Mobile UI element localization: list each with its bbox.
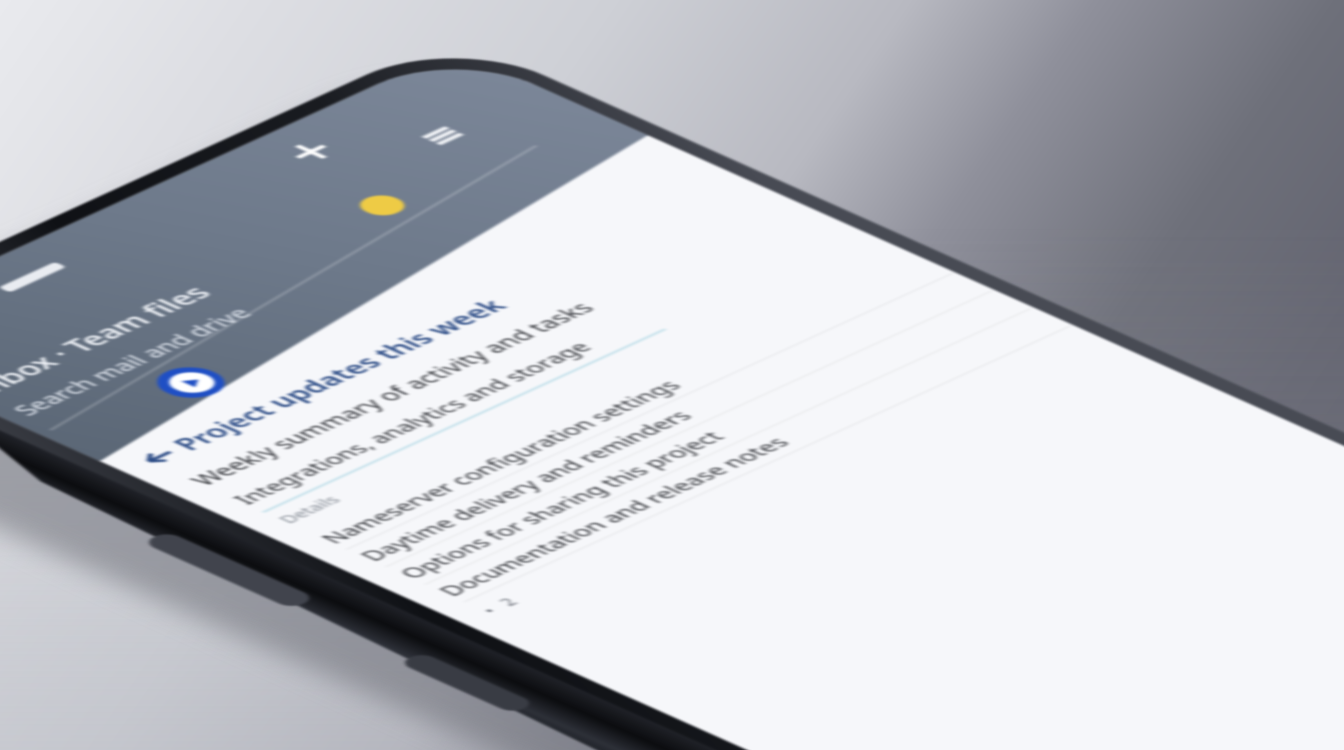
- staticText: Details: [271, 491, 348, 528]
- staticText: Daytime delivery and reminders: [351, 399, 702, 572]
- staticText: Search mail and drive: [2, 298, 260, 424]
- staticText: • 2: [475, 594, 523, 617]
- staticText: Options for sharing this project: [390, 420, 734, 590]
- button[interactable]: Project updates this week: [130, 286, 517, 477]
- button[interactable]: Nameserver configuration settings: [307, 243, 954, 563]
- staticText: Project updates this week: [161, 287, 516, 462]
- staticText: Inbox · Team files: [0, 275, 222, 406]
- staticText: Nameserver configuration settings: [312, 368, 691, 555]
- button[interactable]: Compose: [271, 133, 351, 170]
- button[interactable]: Account: [351, 191, 413, 220]
- button[interactable]: Options for sharing this project: [386, 278, 1032, 598]
- button[interactable]: Daytime delivery and reminders: [346, 260, 993, 580]
- button[interactable]: Sort: [403, 117, 482, 154]
- button[interactable]: Play: [143, 360, 239, 405]
- staticText: Weekly summary of activity and tasks: [180, 289, 603, 498]
- button[interactable]: Documentation and release notes: [425, 295, 1071, 615]
- staticText: Documentation and release notes: [429, 426, 798, 608]
- staticText: Integrations, analytics and storage: [223, 330, 600, 516]
